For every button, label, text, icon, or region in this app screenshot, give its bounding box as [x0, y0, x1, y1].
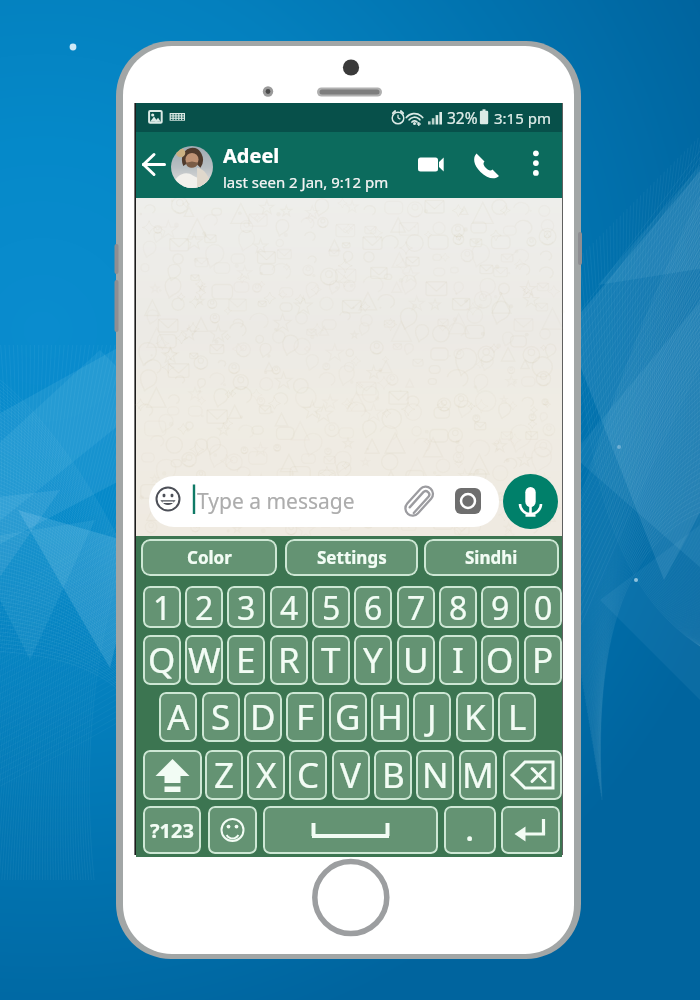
button[interactable]: Sindhi: [424, 539, 559, 576]
staticText: 4: [280, 586, 299, 628]
staticText: Z: [214, 751, 235, 799]
button[interactable]: R: [270, 635, 308, 685]
button[interactable]: 7: [397, 586, 435, 628]
staticText: X: [256, 751, 277, 799]
staticText: 5: [322, 586, 341, 628]
staticText: J: [427, 693, 437, 741]
staticText: R: [278, 636, 300, 684]
button[interactable]: 8: [439, 586, 477, 628]
button[interactable]: C: [289, 750, 327, 800]
staticText: E: [236, 636, 256, 684]
staticText: 0: [534, 586, 553, 628]
button[interactable]: M: [459, 750, 497, 800]
button[interactable]: Space: [263, 806, 438, 854]
staticText: 1: [153, 586, 172, 628]
staticText: 7: [407, 586, 426, 628]
button[interactable]: More options: [518, 146, 554, 182]
button[interactable]: F: [286, 692, 324, 742]
button[interactable]: [171, 146, 213, 188]
staticText: M: [462, 751, 494, 799]
button[interactable]: K: [456, 692, 494, 742]
staticText: S: [211, 693, 231, 741]
button[interactable]: Y: [354, 635, 392, 685]
button[interactable]: 2: [185, 586, 223, 628]
button[interactable]: .: [444, 806, 496, 854]
staticText: A: [167, 693, 190, 741]
button[interactable]: ?123: [143, 806, 201, 854]
button[interactable]: X: [247, 750, 285, 800]
staticText: 3:15 pm: [494, 108, 551, 128]
staticText: K: [464, 693, 486, 741]
button[interactable]: Settings: [285, 539, 418, 576]
button[interactable]: Voice message: [503, 474, 558, 529]
button[interactable]: Call: [470, 146, 508, 184]
button[interactable]: G: [329, 692, 367, 742]
button[interactable]: 6: [354, 586, 392, 628]
button[interactable]: D: [244, 692, 282, 742]
button[interactable]: I: [439, 635, 477, 685]
button[interactable]: N: [416, 750, 454, 800]
button[interactable]: Back: [139, 144, 179, 184]
staticText: ?123: [150, 817, 194, 844]
staticText: 32%: [447, 107, 478, 128]
button[interactable]: 3: [227, 586, 265, 628]
staticText: G: [335, 693, 361, 741]
staticText: last seen 2 Jan, 9:12 pm: [223, 172, 389, 192]
button[interactable]: T: [312, 635, 350, 685]
staticText: Sindhi: [465, 546, 518, 569]
staticText: N: [422, 751, 449, 799]
button[interactable]: Color: [141, 539, 277, 576]
staticText: Adeel: [223, 142, 280, 169]
button[interactable]: Type a message: [149, 476, 499, 527]
button[interactable]: Backspace: [503, 750, 562, 800]
button[interactable]: Emoji: [208, 806, 257, 854]
button[interactable]: Video call: [412, 146, 450, 184]
button[interactable]: V: [332, 750, 370, 800]
button[interactable]: 5: [312, 586, 350, 628]
button[interactable]: 9: [481, 586, 519, 628]
button[interactable]: 4: [270, 586, 308, 628]
button[interactable]: W: [185, 635, 223, 685]
staticText: B: [382, 751, 405, 799]
button[interactable]: S: [202, 692, 240, 742]
staticText: 8: [449, 586, 468, 628]
staticText: H: [377, 693, 403, 741]
staticText: O: [486, 636, 514, 684]
button[interactable]: Z: [205, 750, 243, 800]
staticText: F: [296, 693, 315, 741]
button[interactable]: 1: [143, 586, 181, 628]
button[interactable]: A: [159, 692, 197, 742]
staticText: U: [403, 636, 429, 684]
staticText: V: [340, 751, 362, 799]
staticText: Q: [148, 636, 176, 684]
staticText: Color: [187, 546, 232, 569]
button[interactable]: P: [524, 635, 562, 685]
staticText: L: [508, 693, 527, 741]
staticText: P: [532, 636, 554, 684]
staticText: 3: [237, 586, 256, 628]
button[interactable]: E: [227, 635, 265, 685]
staticText: 9: [491, 586, 510, 628]
staticText: D: [250, 693, 276, 741]
button[interactable]: O: [481, 635, 519, 685]
button[interactable]: H: [371, 692, 409, 742]
button[interactable]: Q: [143, 635, 181, 685]
button[interactable]: L: [498, 692, 536, 742]
button[interactable]: Shift: [143, 750, 202, 800]
staticText: T: [321, 636, 341, 684]
staticText: 6: [364, 586, 383, 628]
button[interactable]: Enter: [501, 806, 560, 854]
staticText: I: [452, 636, 464, 684]
button[interactable]: B: [374, 750, 412, 800]
button[interactable]: J: [413, 692, 451, 742]
button[interactable]: 0: [524, 586, 562, 628]
staticText: Settings: [317, 546, 387, 569]
staticText: Y: [363, 636, 383, 684]
button[interactable]: U: [397, 635, 435, 685]
staticText: C: [297, 751, 320, 799]
staticText: W: [188, 636, 221, 684]
staticText: Type a message: [197, 487, 355, 516]
staticText: .: [466, 813, 474, 848]
staticText: 2: [195, 586, 214, 628]
